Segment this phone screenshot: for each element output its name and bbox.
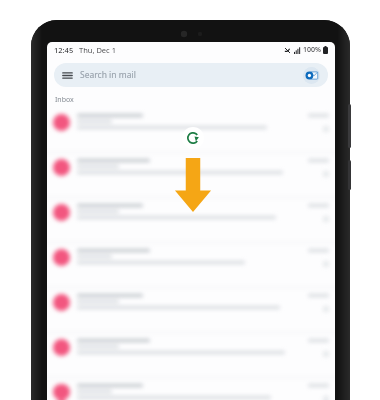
other: Open navigation drawer (62, 70, 73, 81)
button[interactable] (47, 198, 335, 243)
button[interactable] (47, 153, 335, 198)
staticText: Inbox (55, 95, 74, 105)
staticText: Search in mail (80, 69, 136, 81)
staticText: Thu, Dec 1 (79, 45, 116, 55)
staticText: 100% (303, 45, 321, 55)
button[interactable]: Refresh (182, 127, 204, 149)
button[interactable] (47, 288, 335, 333)
button[interactable] (47, 378, 335, 400)
button[interactable]: Account (303, 67, 320, 84)
button[interactable] (47, 243, 335, 288)
button[interactable] (47, 108, 335, 153)
button[interactable] (47, 333, 335, 378)
button[interactable]: Open navigation drawer (54, 63, 328, 87)
staticText: 12:45 (54, 45, 74, 55)
